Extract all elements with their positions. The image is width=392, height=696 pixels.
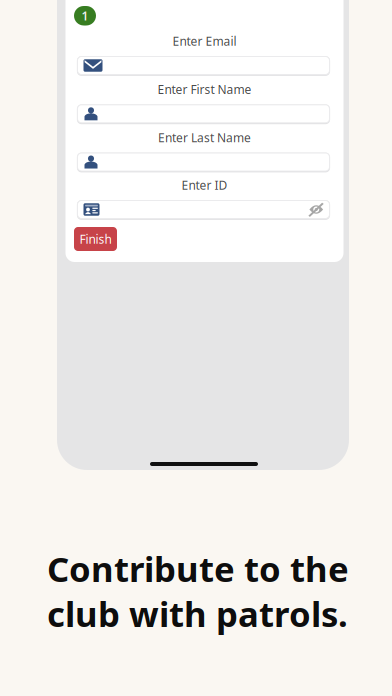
staticText: Enter First Name bbox=[157, 81, 251, 97]
staticText: 1 bbox=[81, 8, 88, 24]
button[interactable]: Enter ID bbox=[77, 200, 329, 218]
staticText: Enter Last Name bbox=[158, 129, 251, 145]
staticText: Contribute to the bbox=[47, 545, 349, 591]
staticText: club with patrols. bbox=[47, 590, 348, 636]
button[interactable]: Step 1 bbox=[74, 6, 96, 25]
button[interactable]: Enter First Name bbox=[77, 105, 329, 123]
button[interactable]: Finish bbox=[74, 227, 117, 251]
staticText: Finish bbox=[79, 231, 111, 247]
staticText: Enter Email bbox=[172, 33, 236, 49]
button[interactable]: Enter Last Name bbox=[77, 153, 329, 171]
staticText: Enter ID bbox=[181, 177, 227, 193]
button[interactable]: Enter Email bbox=[77, 56, 329, 74]
